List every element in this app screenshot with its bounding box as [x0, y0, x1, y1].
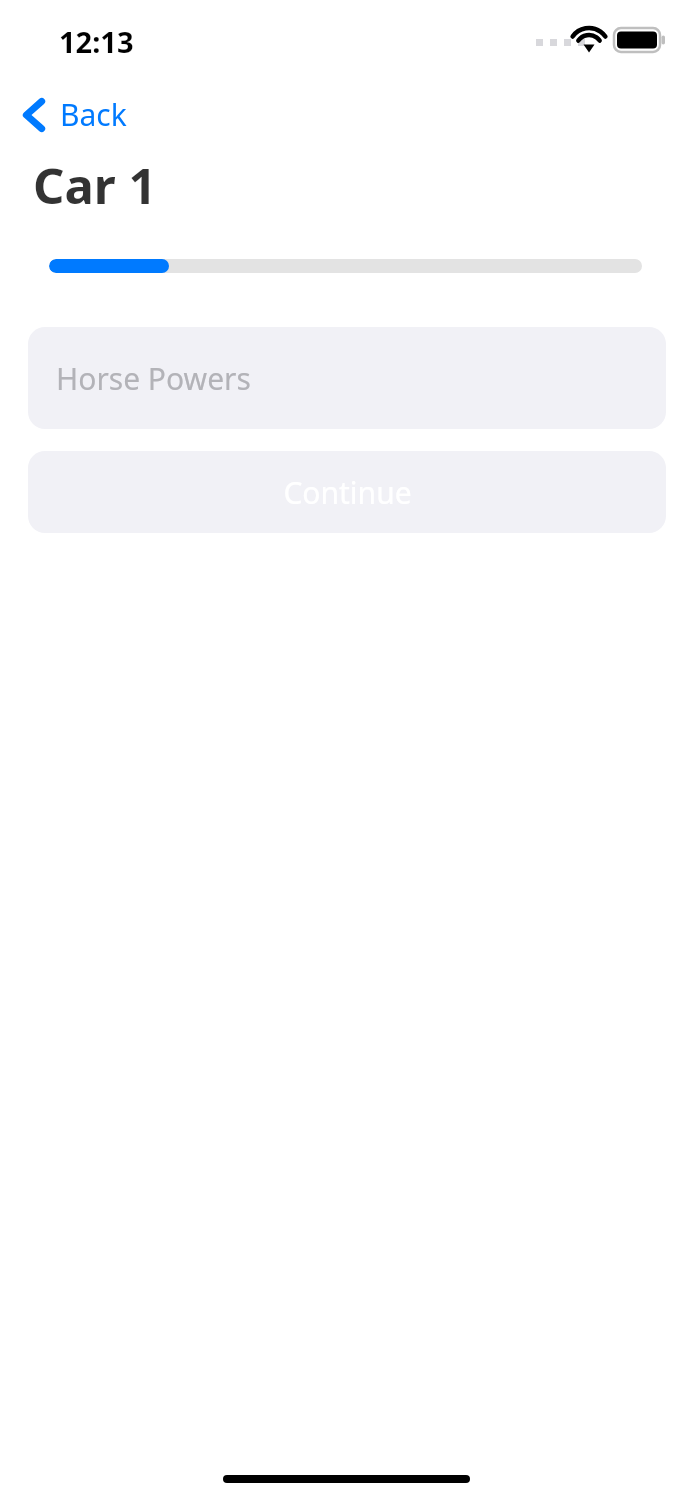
- button[interactable]: Horse Powers: [28, 327, 666, 429]
- button[interactable]: Back: [14, 88, 135, 141]
- staticText: Car 1: [33, 152, 157, 219]
- staticText: Back: [60, 94, 127, 135]
- staticText: 12:13: [59, 22, 134, 61]
- staticText: Continue: [283, 472, 412, 513]
- staticText: Horse Powers: [56, 358, 251, 399]
